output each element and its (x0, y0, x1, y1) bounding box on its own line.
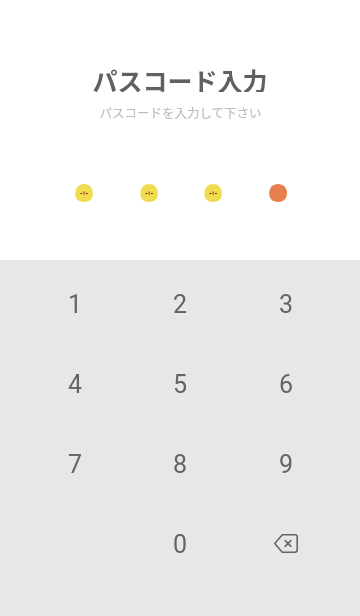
staticText: 3 (279, 290, 294, 319)
button[interactable]: 3 (236, 266, 336, 342)
staticText: パスコードを入力して下さい (99, 103, 262, 121)
button[interactable]: 6 (236, 346, 336, 422)
button[interactable]: 0 (130, 506, 230, 582)
staticText: 9 (279, 450, 294, 479)
staticText: 1 (68, 290, 83, 319)
button[interactable]: 7 (25, 426, 125, 502)
button[interactable]: 5 (130, 346, 230, 422)
staticText: 4 (68, 370, 83, 399)
button[interactable]: 1 (25, 266, 125, 342)
staticText: 8 (173, 450, 188, 479)
staticText: 5 (173, 370, 188, 399)
button[interactable]: 9 (236, 426, 336, 502)
button[interactable]: 8 (130, 426, 230, 502)
staticText: 2 (173, 290, 188, 319)
staticText: 0 (173, 530, 188, 559)
staticText: パスコード入力 (92, 62, 268, 92)
button[interactable]: 4 (25, 346, 125, 422)
button[interactable]: 2 (130, 266, 230, 342)
staticText: 7 (68, 450, 83, 479)
button[interactable]: Backspace (236, 505, 336, 581)
staticText: 6 (279, 370, 294, 399)
